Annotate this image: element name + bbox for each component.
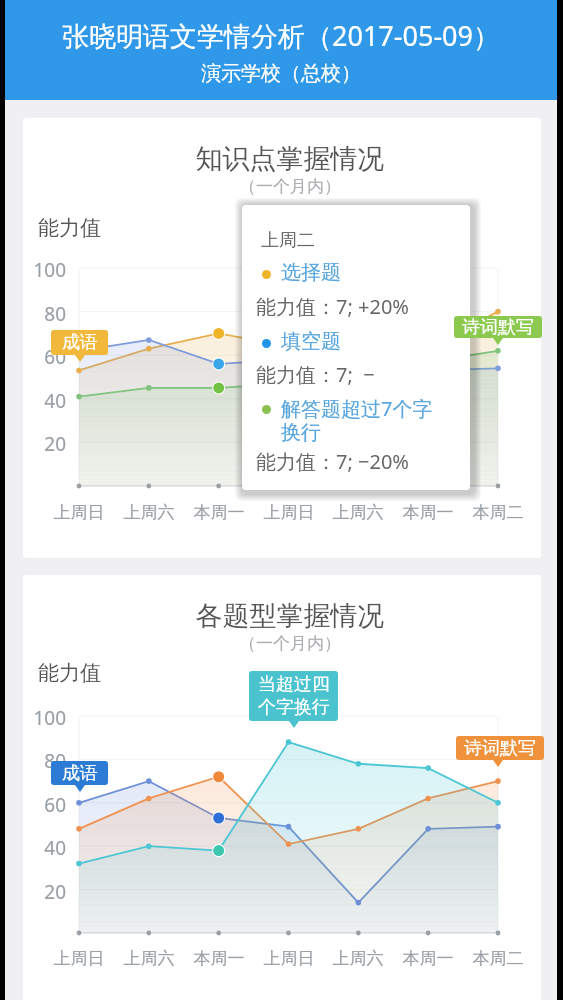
- staticText: 能力值：7; −20%: [256, 448, 409, 475]
- button[interactable]: 成语: [51, 330, 108, 355]
- staticText: （一个月内）: [31, 633, 541, 654]
- button[interactable]: 诗词默写: [454, 316, 542, 338]
- staticText: 成语: [62, 331, 98, 354]
- staticText: 上周六: [318, 502, 398, 523]
- button[interactable]: 张晓明语文学情分析（2017-05-09）: [5, 0, 557, 100]
- staticText: 演示学校（总校）: [5, 61, 557, 86]
- staticText: 当超过四 个字换行: [258, 673, 330, 719]
- staticText: 40: [23, 835, 66, 861]
- staticText: 能力值：7; +20%: [256, 293, 409, 320]
- staticText: 诗词默写: [464, 737, 536, 760]
- staticText: 100: [23, 705, 66, 731]
- staticText: 上周二: [261, 229, 315, 252]
- staticText: 本周一: [179, 948, 259, 969]
- staticText: 本周二: [458, 948, 538, 969]
- staticText: 20: [23, 431, 66, 457]
- staticText: 20: [23, 879, 66, 905]
- staticText: 成语: [62, 762, 98, 785]
- staticText: 能力值：7; −: [256, 361, 375, 388]
- staticText: 能力值: [38, 660, 101, 686]
- staticText: 本周二: [458, 502, 538, 523]
- staticText: 100: [23, 257, 66, 283]
- staticText: 上周日: [249, 502, 329, 523]
- staticText: 上周六: [109, 502, 189, 523]
- staticText: 填空题: [281, 329, 341, 354]
- staticText: 上周日: [39, 948, 119, 969]
- staticText: 诗词默写: [462, 316, 534, 338]
- staticText: 各题型掌握情况: [31, 599, 541, 633]
- staticText: 80: [23, 748, 66, 774]
- button[interactable]: 知识点掌握情况: [23, 118, 541, 558]
- staticText: 本周一: [179, 502, 259, 523]
- staticText: 60: [23, 344, 66, 370]
- button[interactable]: 当超过四 个字换行: [249, 671, 338, 721]
- staticText: 60: [23, 792, 66, 818]
- staticText: 解答题超过7个字 换行: [281, 395, 433, 445]
- button[interactable]: 诗词默写: [456, 736, 544, 760]
- button[interactable]: 各题型掌握情况: [23, 575, 541, 1000]
- staticText: 40: [23, 388, 66, 414]
- staticText: 上周日: [39, 502, 119, 523]
- staticText: 上周六: [318, 948, 398, 969]
- staticText: 能力值: [38, 215, 101, 241]
- staticText: 上周日: [249, 948, 329, 969]
- staticText: 上周六: [109, 948, 189, 969]
- staticText: 知识点掌握情况: [31, 142, 541, 176]
- staticText: 80: [23, 301, 66, 327]
- staticText: 选择题: [281, 260, 341, 285]
- button[interactable]: 成语: [51, 761, 108, 785]
- staticText: 张晓明语文学情分析（2017-05-09）: [5, 17, 557, 54]
- staticText: （一个月内）: [31, 176, 541, 197]
- staticText: 本周一: [388, 948, 468, 969]
- staticText: 本周一: [388, 502, 468, 523]
